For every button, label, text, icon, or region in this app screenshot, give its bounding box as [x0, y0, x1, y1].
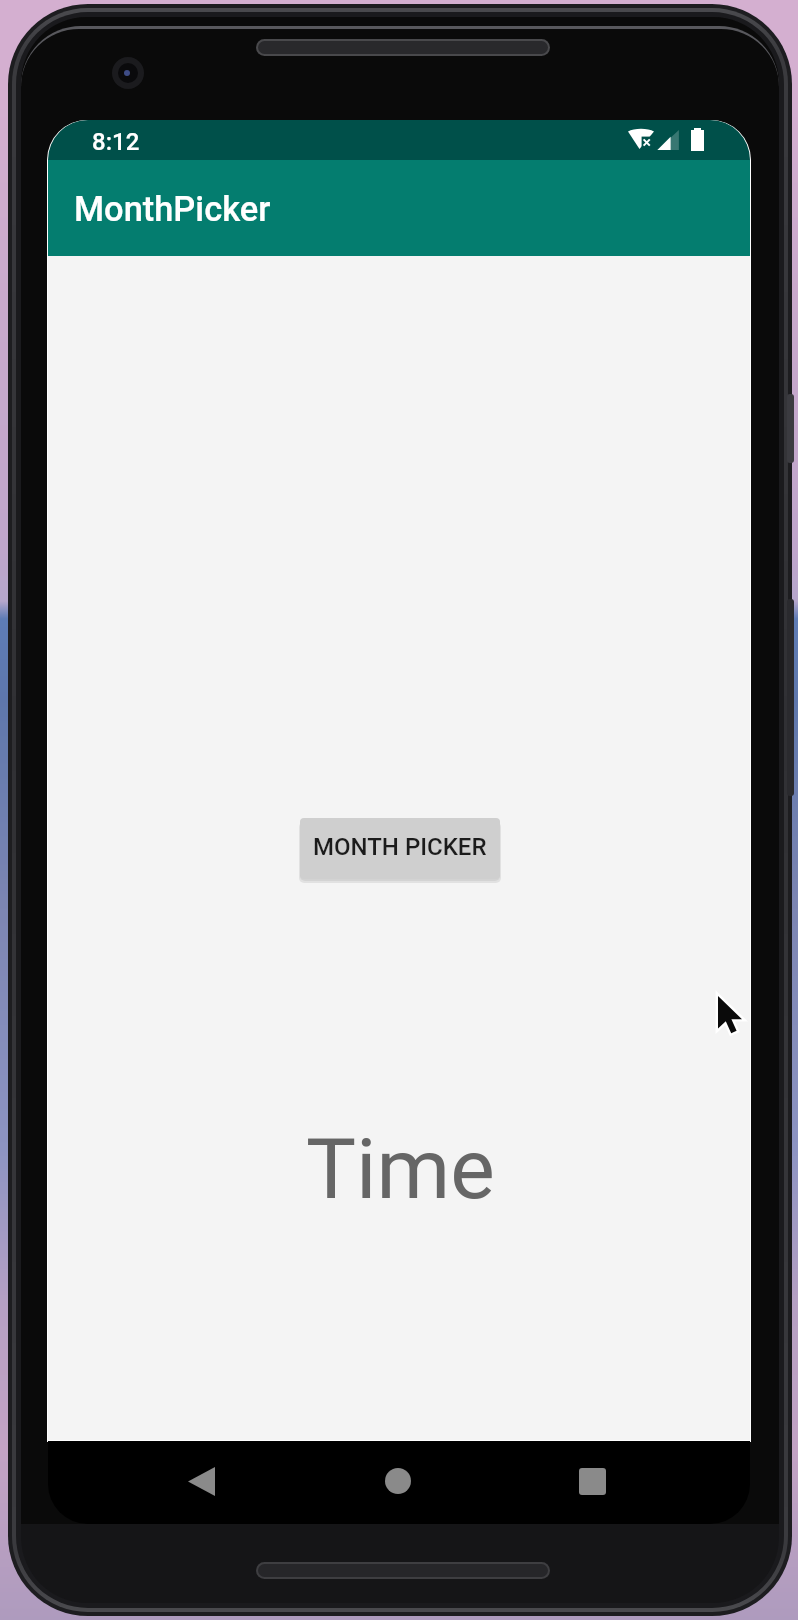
staticText: 8:12 [92, 128, 140, 156]
staticText: Time [306, 1120, 495, 1218]
staticText: MONTH PICKER [313, 833, 487, 861]
button[interactable]: MONTH PICKER [300, 818, 500, 879]
button[interactable]: Recent apps [566, 1455, 618, 1507]
staticText: MonthPicker [74, 189, 271, 229]
button[interactable]: Back [175, 1455, 227, 1507]
button[interactable]: Home [372, 1455, 424, 1507]
